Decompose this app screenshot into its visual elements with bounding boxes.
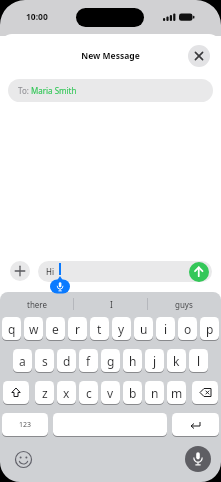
button[interactable]: w [24, 317, 43, 342]
staticText: m [171, 385, 183, 401]
button[interactable]: g [101, 349, 120, 374]
staticText: there [27, 299, 47, 310]
staticText: s [42, 353, 48, 369]
staticText: k [173, 353, 180, 369]
staticText: i [164, 321, 168, 337]
button[interactable]: j [145, 349, 164, 374]
staticText: o [184, 321, 192, 337]
button[interactable]: a [13, 349, 32, 374]
button[interactable]: x [57, 381, 76, 406]
button[interactable]: n [145, 381, 164, 406]
button[interactable] [192, 381, 218, 406]
button[interactable]: l [189, 349, 208, 374]
staticText: q [8, 321, 16, 337]
staticText: b [129, 385, 137, 401]
button[interactable] [53, 413, 167, 438]
staticText: l [197, 353, 201, 369]
button[interactable]: d [57, 349, 76, 374]
button[interactable]: I [74, 295, 148, 313]
button[interactable]: b [123, 381, 142, 406]
staticText: Hi [46, 266, 54, 277]
staticText: z [42, 385, 48, 401]
staticText: t [97, 321, 102, 337]
button[interactable]: k [167, 349, 186, 374]
button[interactable] [172, 413, 219, 438]
button[interactable] [14, 450, 33, 469]
staticText: y [118, 321, 125, 337]
button[interactable] [185, 446, 211, 472]
button[interactable]: y [112, 317, 131, 342]
staticText: New Message [0, 50, 221, 62]
staticText: r [75, 321, 80, 337]
button[interactable]: h [123, 349, 142, 374]
button[interactable]: Hi [38, 261, 212, 282]
button[interactable]: m [167, 381, 186, 406]
button[interactable]: z [35, 381, 54, 406]
staticText: guys [175, 299, 193, 310]
button[interactable]: p [200, 317, 219, 342]
button[interactable]: o [178, 317, 197, 342]
staticText: 10:00 [26, 11, 48, 23]
button[interactable] [10, 261, 30, 281]
staticText: j [153, 353, 157, 369]
button[interactable] [189, 262, 209, 282]
staticText: x [63, 385, 70, 401]
staticText: e [52, 321, 59, 337]
staticText: n [151, 385, 159, 401]
staticText: a [19, 353, 26, 369]
button[interactable]: q [2, 317, 21, 342]
staticText: c [86, 385, 92, 401]
button[interactable]: s [35, 349, 54, 374]
button[interactable]: c [79, 381, 98, 406]
staticText: g [107, 353, 115, 369]
staticText: Maria Smith [31, 85, 77, 96]
button[interactable]: v [101, 381, 120, 406]
staticText: w [29, 321, 39, 337]
button[interactable]: i [156, 317, 175, 342]
button[interactable]: To: [8, 79, 213, 102]
button[interactable]: e [46, 317, 65, 342]
staticText: I [110, 299, 113, 310]
staticText: 123 [19, 420, 32, 430]
staticText: h [129, 353, 137, 369]
button[interactable]: f [79, 349, 98, 374]
staticText: u [140, 321, 148, 337]
button[interactable]: t [90, 317, 109, 342]
staticText: d [63, 353, 71, 369]
staticText: To: [18, 85, 31, 96]
button[interactable]: guys [147, 295, 221, 313]
button[interactable]: u [134, 317, 153, 342]
staticText: v [107, 385, 114, 401]
button[interactable] [188, 45, 210, 67]
staticText: f [86, 353, 91, 369]
button[interactable]: 123 [2, 413, 48, 438]
button[interactable] [3, 381, 29, 406]
staticText: p [206, 321, 214, 337]
button[interactable]: there [0, 295, 74, 313]
button[interactable]: r [68, 317, 87, 342]
